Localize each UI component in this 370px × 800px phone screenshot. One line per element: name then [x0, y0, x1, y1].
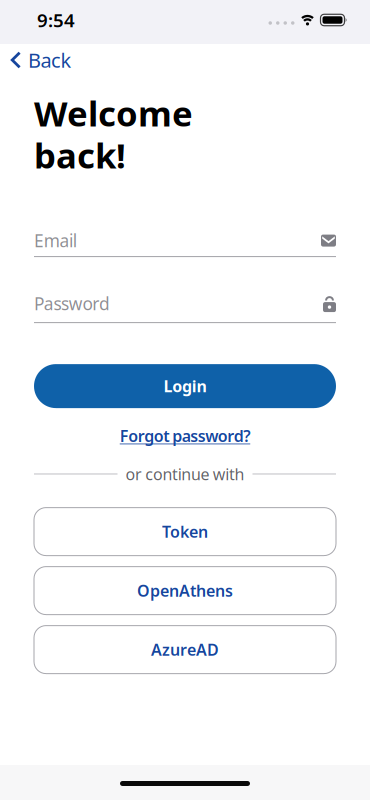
button[interactable]: Token	[34, 508, 336, 556]
button[interactable]: Login	[34, 364, 336, 408]
staticText: Email	[34, 229, 77, 252]
staticText: 9:54	[37, 8, 75, 32]
staticText: Token	[162, 521, 208, 542]
staticText: AzureAD	[151, 639, 219, 660]
button[interactable]: OpenAthens	[34, 567, 336, 615]
staticText: Welcome	[34, 90, 193, 136]
staticText: Password	[34, 292, 110, 315]
button[interactable]: Back	[0, 47, 71, 73]
staticText: or continue with	[125, 463, 244, 485]
staticText: OpenAthens	[137, 580, 233, 601]
button[interactable]: AzureAD	[34, 626, 336, 674]
staticText: back!	[34, 132, 126, 178]
button[interactable]: Forgot password?	[120, 425, 250, 446]
staticText: Login	[163, 375, 207, 397]
staticText: Forgot password?	[120, 425, 250, 446]
staticText: Back	[28, 47, 71, 73]
